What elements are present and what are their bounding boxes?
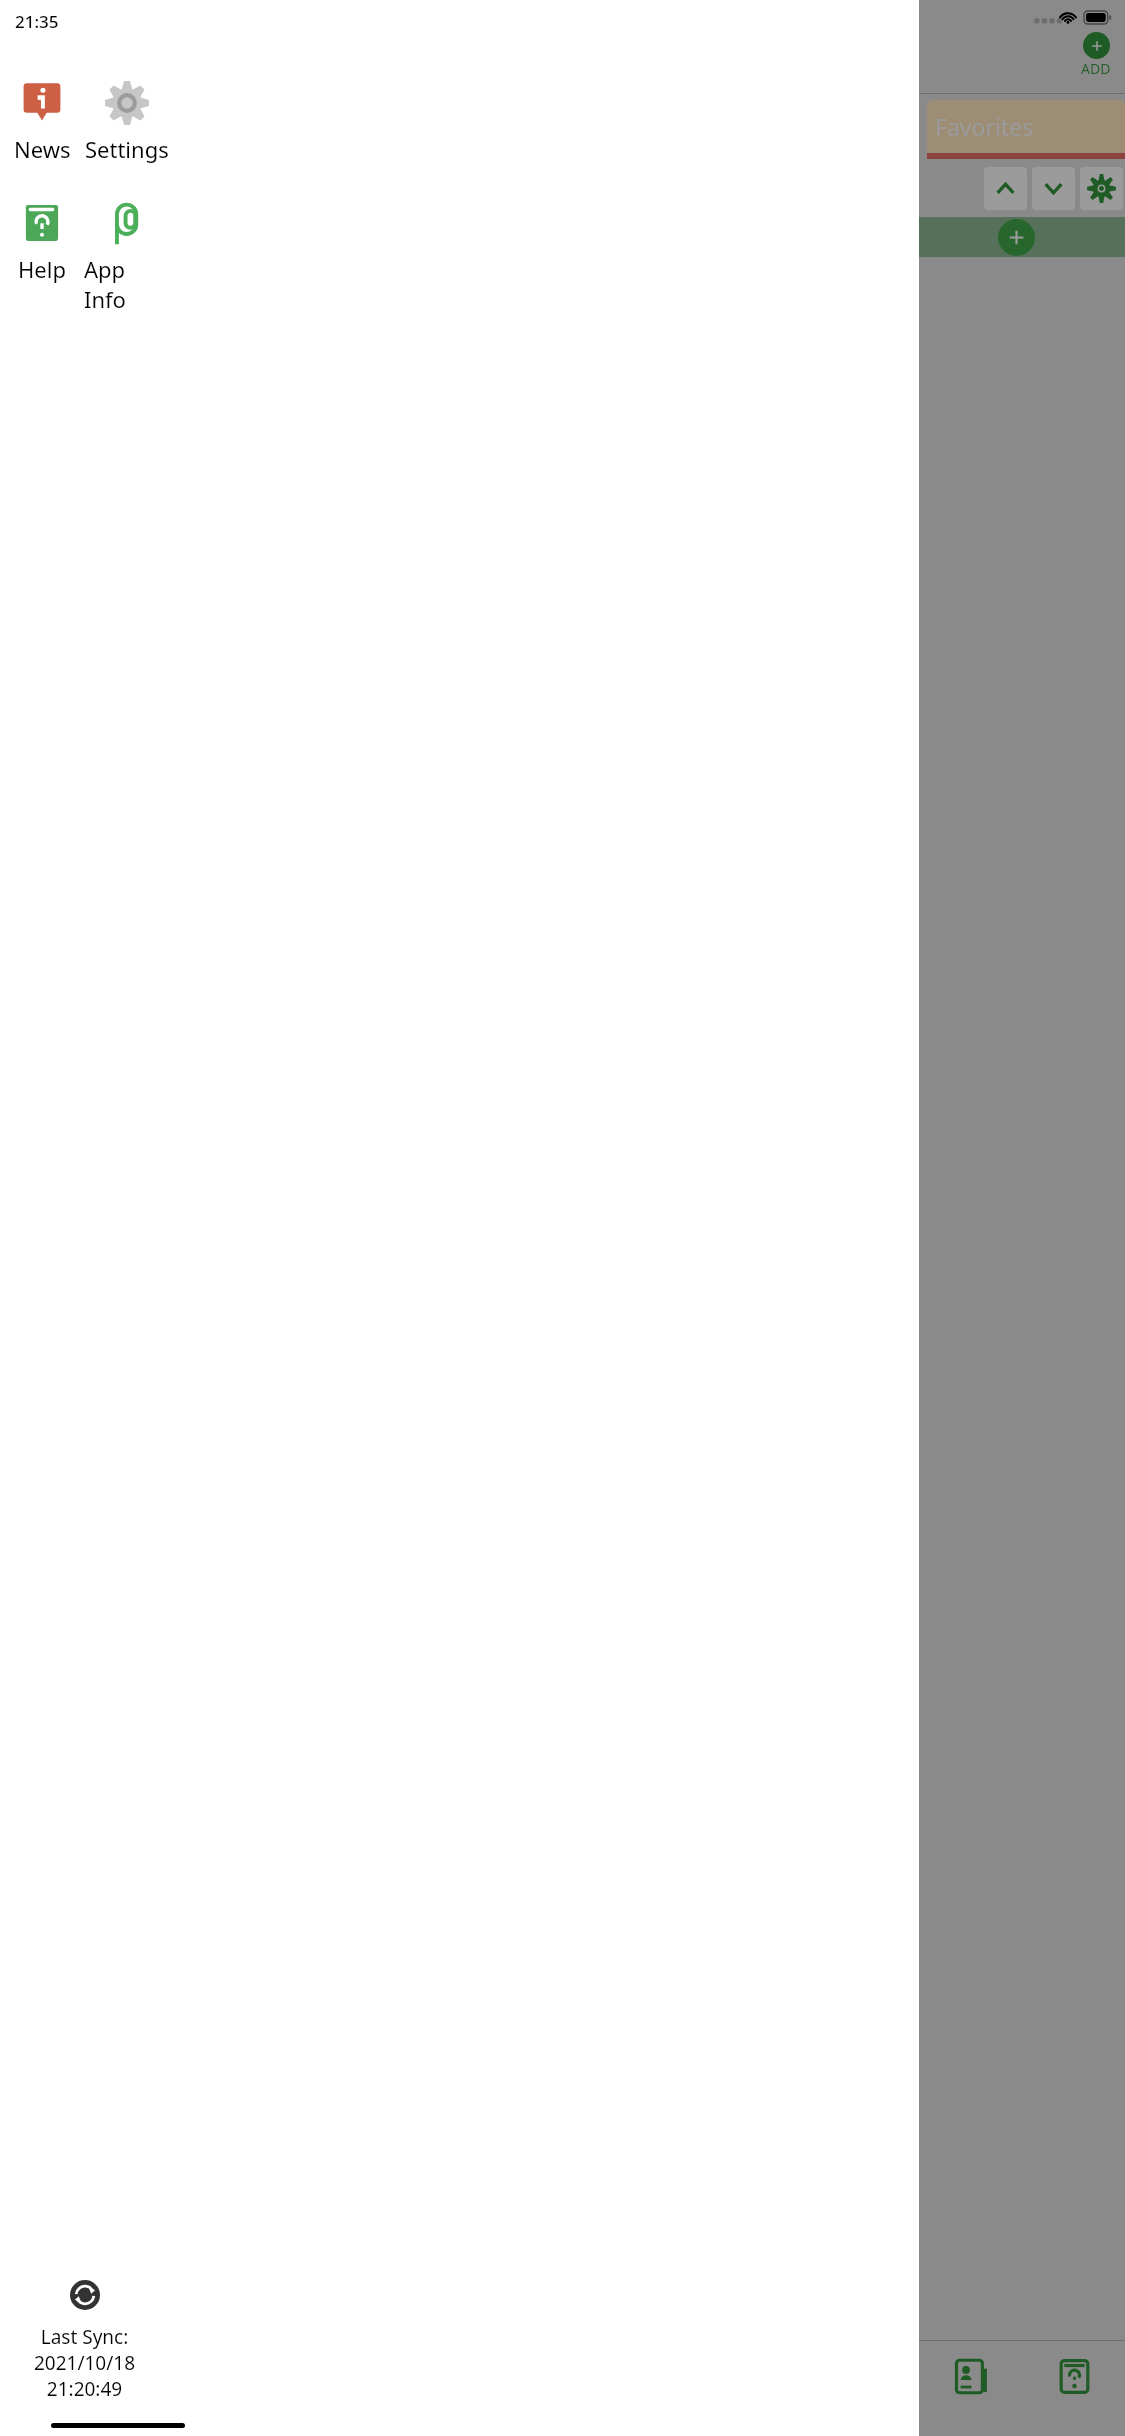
button[interactable]: News xyxy=(0,76,84,168)
button[interactable]: Settings xyxy=(84,76,169,168)
button[interactable]: Help xyxy=(1024,2358,1125,2395)
button[interactable]: Add item xyxy=(998,219,1035,256)
staticText: Favorites xyxy=(935,111,1034,142)
staticText: News xyxy=(14,134,71,164)
staticText: Last Sync: 2021/10/18 21:20:49 xyxy=(0,2324,169,2402)
staticText: Settings xyxy=(85,134,169,164)
button[interactable]: Favorites xyxy=(927,100,1125,153)
staticText: 21:35 xyxy=(15,10,59,33)
button[interactable]: Help xyxy=(0,196,84,288)
button[interactable] xyxy=(984,167,1027,210)
button[interactable]: Contacts xyxy=(923,2358,1024,2395)
button[interactable]: ADD xyxy=(1081,32,1111,78)
staticText: Help xyxy=(18,254,66,284)
staticText: App Info xyxy=(84,254,169,314)
staticText: ADD xyxy=(1081,59,1111,78)
button[interactable] xyxy=(1032,167,1075,210)
button[interactable]: App Info xyxy=(84,196,169,318)
button[interactable] xyxy=(1080,167,1123,210)
button[interactable]: Sync now xyxy=(62,2272,108,2318)
